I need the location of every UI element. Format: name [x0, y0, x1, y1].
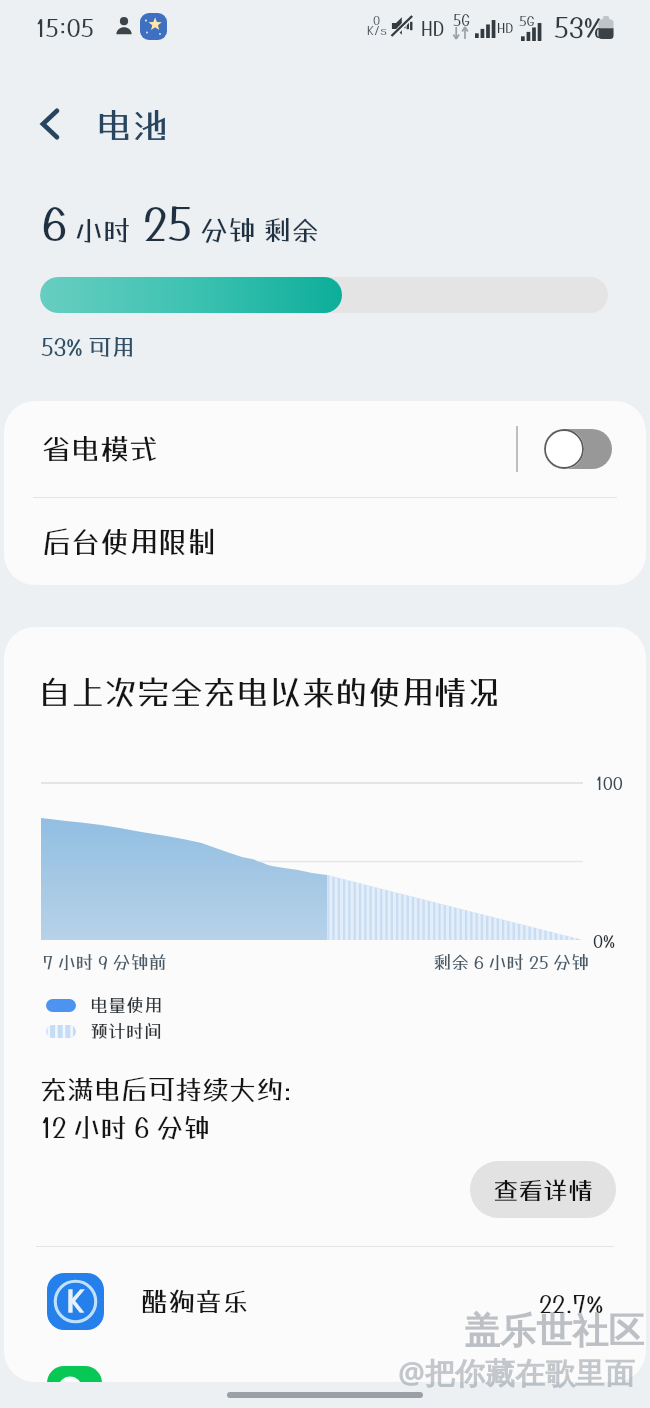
staticText: K	[67, 1283, 85, 1318]
staticText: HD	[497, 19, 514, 36]
staticText: K/s	[367, 23, 387, 37]
staticText: HD	[421, 16, 445, 40]
button[interactable]: 后台使用限制	[4, 498, 646, 585]
staticText: 省电模式	[42, 432, 516, 466]
staticText: 剩余 6 小时 25 分钟	[433, 951, 589, 972]
staticText: 预计时间	[90, 1020, 162, 1041]
button[interactable]: 查看详情	[470, 1161, 616, 1218]
button[interactable]: K	[4, 1247, 646, 1355]
staticText: 15:05	[36, 13, 94, 41]
staticText: 查看详情	[493, 1175, 594, 1204]
button[interactable]: Power saving mode toggle	[544, 429, 612, 469]
staticText: 12 小时 6 分钟	[41, 1111, 211, 1143]
staticText: 53% 可用	[41, 333, 135, 360]
staticText: 0%	[593, 931, 616, 951]
staticText: 22.7%	[539, 1289, 604, 1317]
button[interactable]: Back	[27, 92, 75, 140]
staticText: 自上次完全充电以来的使用情况	[38, 673, 500, 712]
staticText: 6	[41, 197, 68, 250]
staticText: 盖乐世社区	[464, 1308, 644, 1353]
staticText: 后台使用限制	[42, 525, 217, 559]
staticText: 酷狗音乐	[141, 1285, 249, 1317]
staticText: 0	[373, 13, 381, 27]
staticText: 充满电后可持续大约：	[40, 1073, 310, 1105]
staticText: 25	[143, 197, 193, 250]
button[interactable]: 省电模式	[4, 401, 646, 497]
staticText: 小时	[75, 214, 132, 247]
staticText: 5G	[519, 12, 535, 29]
staticText: @把你藏在歌里面	[398, 1352, 635, 1393]
staticText: 电量使用	[90, 994, 162, 1015]
staticText: 分钟 剩余	[200, 214, 319, 247]
staticText: 7 小时 9 分钟前	[43, 951, 167, 972]
staticText: 100	[596, 773, 623, 793]
staticText: 53%	[554, 11, 603, 43]
staticText: 电池	[96, 104, 169, 146]
staticText: 5G	[453, 11, 470, 29]
